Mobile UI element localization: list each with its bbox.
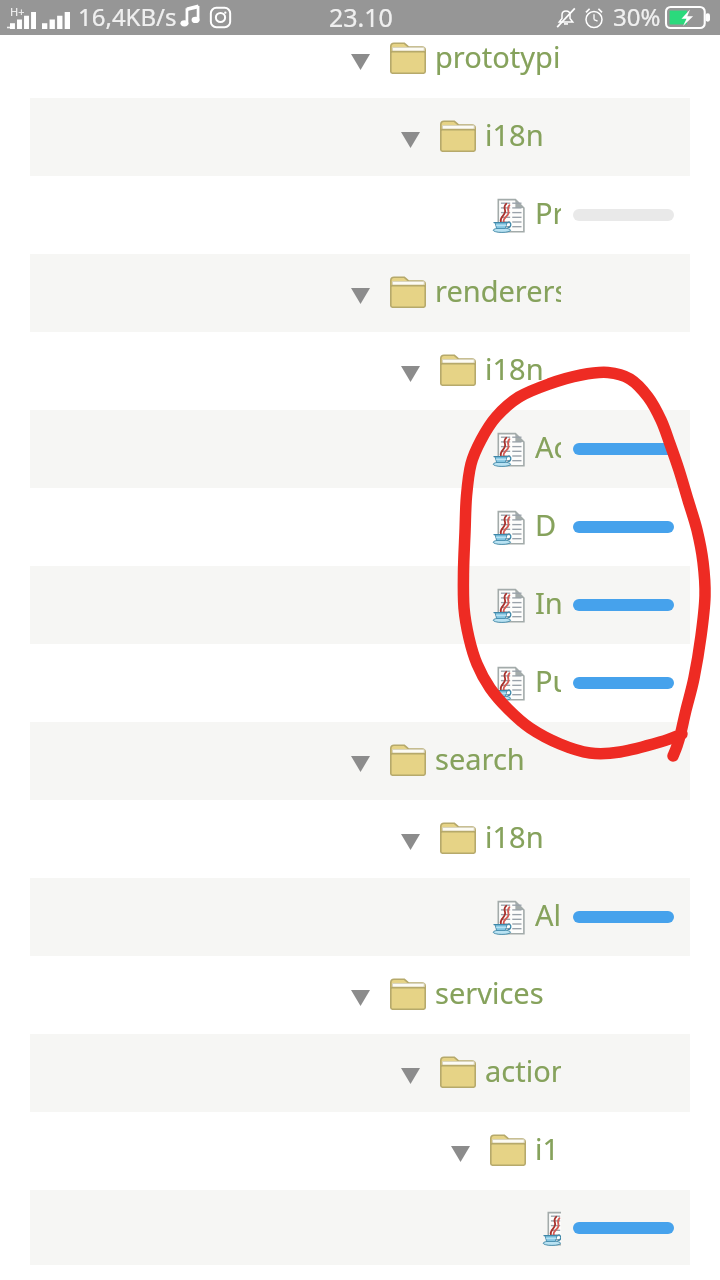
button[interactable]: i18n folder (0, 800, 720, 878)
button[interactable]: Public.java (0, 644, 720, 722)
button[interactable]: Collapse i18n folder (443, 1112, 477, 1190)
staticText: Al (535, 895, 561, 934)
staticText: Pu (535, 661, 561, 700)
button[interactable]: Collapse action folder (393, 1034, 427, 1112)
button[interactable]: Date.java (0, 488, 720, 566)
staticText: i18n (485, 817, 544, 856)
staticText: In (535, 583, 561, 622)
staticText: i18n (485, 349, 544, 388)
button[interactable]: prototyping folder (0, 35, 720, 98)
button[interactable]: java source file (0, 1190, 720, 1265)
button[interactable]: Collapse i18n folder (393, 98, 427, 176)
button[interactable]: All.java (0, 878, 720, 956)
button[interactable]: Properties.java (0, 176, 720, 254)
button[interactable]: Index.java (0, 566, 720, 644)
button[interactable]: Collapse prototyping folder (343, 35, 377, 98)
button[interactable]: Collapse renderers folder (343, 254, 377, 332)
staticText: i1 (535, 1129, 560, 1168)
staticText: action (485, 1051, 561, 1090)
button[interactable]: action folder (0, 1034, 720, 1112)
button[interactable]: search folder (0, 722, 720, 800)
staticText: 23.10 (329, 0, 393, 34)
button[interactable]: Collapse i18n folder (393, 800, 427, 878)
button[interactable]: Collapse search folder (343, 722, 377, 800)
staticText: i18n (485, 115, 544, 154)
staticText: 30% (613, 0, 661, 33)
button[interactable]: renderers folder (0, 254, 720, 332)
staticText: 16,4KB/s (78, 0, 177, 33)
button[interactable]: Collapse services folder (343, 956, 377, 1034)
button[interactable]: Action.java (0, 410, 720, 488)
staticText: Pr (535, 193, 561, 232)
staticText: Ac (535, 427, 561, 466)
staticText: D (535, 505, 557, 544)
button[interactable]: i18n folder (0, 1112, 720, 1190)
button[interactable]: Collapse i18n folder (393, 332, 427, 410)
staticText: prototypi (435, 37, 561, 76)
button[interactable]: services folder (0, 956, 720, 1034)
staticText: search (435, 739, 525, 778)
button[interactable]: i18n folder (0, 98, 720, 176)
staticText: renderers (435, 271, 561, 310)
staticText: H+ (10, 4, 25, 19)
staticText: services (435, 973, 544, 1012)
button[interactable]: i18n folder (0, 332, 720, 410)
